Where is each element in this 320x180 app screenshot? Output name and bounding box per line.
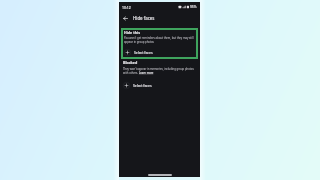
staticText: Select faces — [133, 83, 152, 88]
staticText: Blocked — [123, 60, 138, 65]
staticText: Select faces — [134, 50, 153, 55]
staticText: 95% — [190, 5, 197, 9]
staticText: You won't get reminders about them, but … — [124, 36, 197, 44]
button[interactable]: Select faces — [123, 47, 154, 57]
button[interactable]: Back — [120, 13, 130, 23]
staticText: 10:12 — [122, 5, 131, 10]
staticText: Hide faces — [133, 15, 155, 21]
staticText: Hide this — [124, 30, 140, 35]
button[interactable]: Select faces — [122, 80, 153, 90]
staticText: They won't appear in memories, including… — [123, 67, 195, 75]
